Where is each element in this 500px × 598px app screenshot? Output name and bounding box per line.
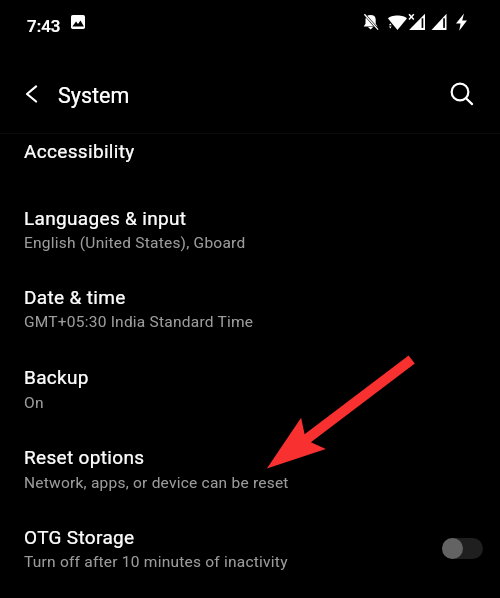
button[interactable]: OTG Storage toggle (442, 538, 483, 559)
staticText: Turn off after 10 minutes of inactivity (24, 553, 288, 571)
staticText: Network, apps, or device can be reset (24, 474, 289, 492)
staticText: Date & time (24, 286, 126, 308)
button[interactable]: Backup (0, 332, 500, 412)
button[interactable]: Date & time (0, 252, 500, 332)
staticText: Languages & input (24, 207, 187, 229)
button[interactable]: Languages & input (0, 179, 500, 252)
button[interactable]: OTG Storage (0, 492, 500, 598)
staticText: GMT+05:30 India Standard Time (24, 313, 254, 331)
staticText: Accessibility (24, 140, 135, 162)
button[interactable]: Back (7, 72, 51, 116)
staticText: Reset options (24, 446, 145, 468)
button[interactable]: Accessibility (0, 134, 500, 179)
staticText: 7:43 (27, 16, 61, 36)
button[interactable]: Search (438, 70, 482, 114)
staticText: On (24, 394, 44, 412)
button[interactable]: Reset options (0, 412, 500, 492)
staticText: English (United States), Gboard (24, 234, 246, 252)
staticText: System (58, 83, 130, 108)
staticText: OTG Storage (24, 526, 135, 548)
staticText: Backup (24, 366, 89, 388)
